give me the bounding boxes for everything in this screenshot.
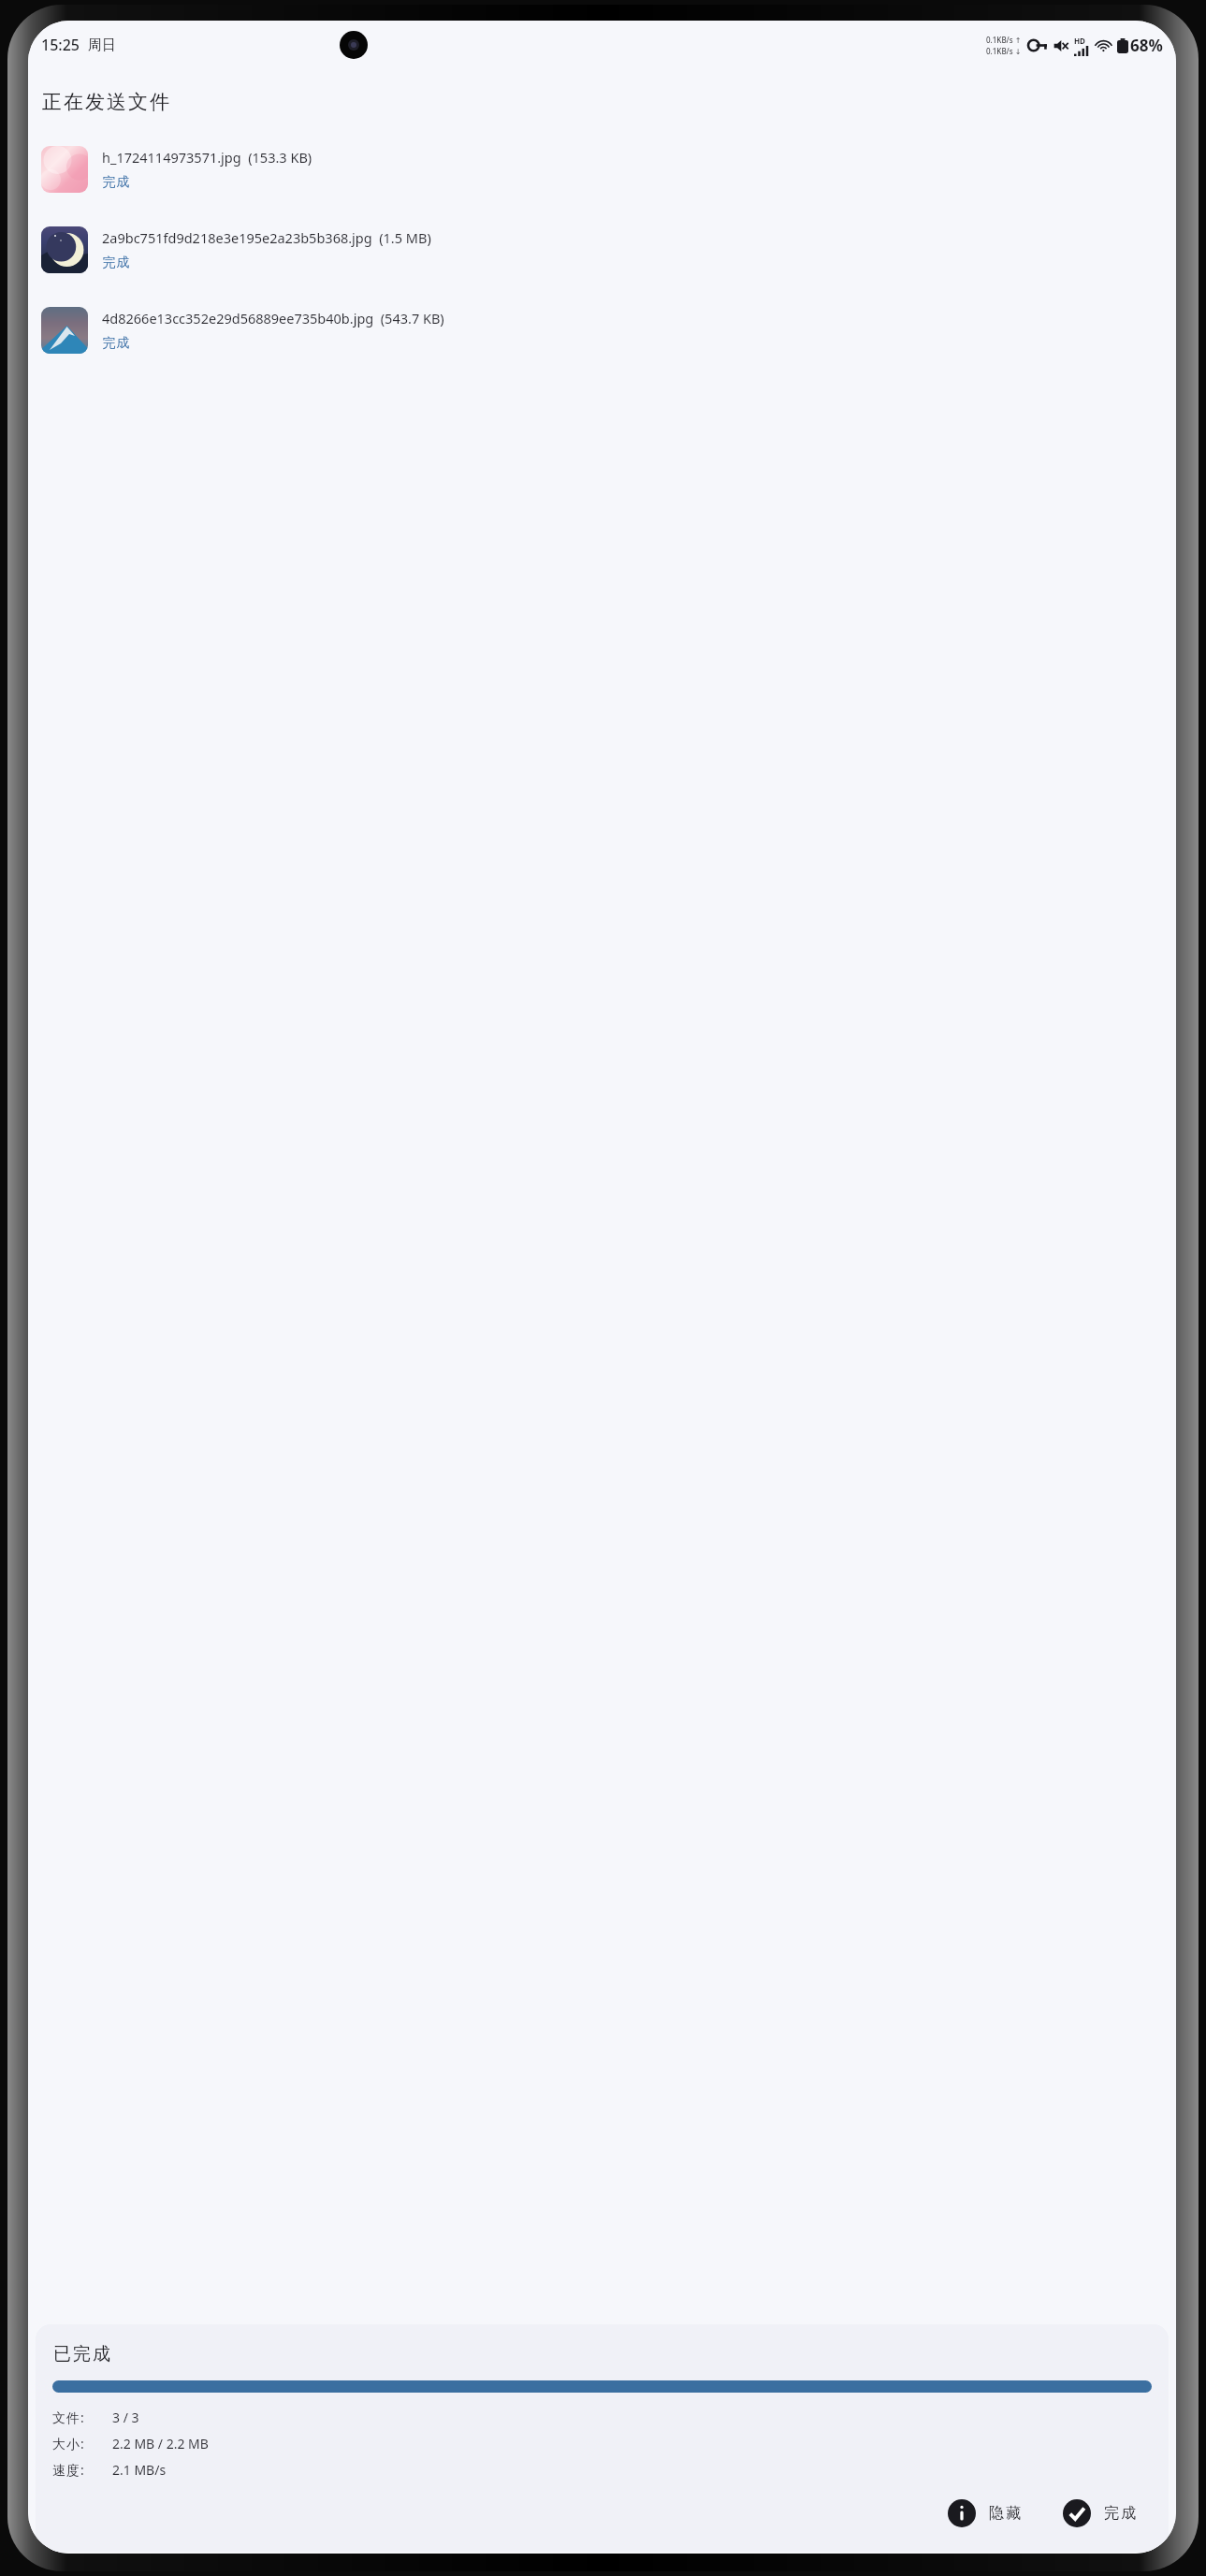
staticText: h_1724114973571.jpg (153.3 KB) [102, 148, 312, 167]
staticText: 0.1KB/s ↓ [986, 46, 1022, 56]
staticText: 0.1KB/s ↑ [986, 35, 1022, 45]
staticText: 68% [1130, 35, 1163, 56]
staticText: 4d8266e13cc352e29d56889ee735b40b.jpg (54… [102, 309, 444, 327]
button[interactable]: 4d8266e13cc352e29d56889ee735b40b.jpg (54… [28, 290, 1176, 371]
staticText: 完成 [102, 174, 130, 191]
staticText: 3 / 3 [112, 2409, 139, 2426]
staticText: 文件: [52, 2409, 107, 2426]
staticText: 完成 [102, 255, 130, 271]
staticText: 隐藏 [988, 2504, 1022, 2523]
staticText: 速度: [52, 2461, 107, 2479]
staticText: HD [1074, 36, 1085, 46]
staticText: 15:25 [41, 35, 80, 55]
staticText: 2a9bc751fd9d218e3e195e2a23b5b368.jpg (1.… [102, 228, 431, 247]
staticText: 完成 [102, 335, 130, 352]
button[interactable]: 完成 [1059, 2496, 1142, 2531]
staticText: 正在发送文件 [41, 90, 170, 114]
staticText: 2.1 MB/s [112, 2461, 167, 2479]
button[interactable]: 2a9bc751fd9d218e3e195e2a23b5b368.jpg (1.… [28, 210, 1176, 290]
button[interactable]: 隐藏 [944, 2496, 1027, 2531]
staticText: 周日 [88, 36, 116, 54]
button[interactable]: h_1724114973571.jpg (153.3 KB) [28, 129, 1176, 210]
staticText: 大小: [52, 2435, 107, 2452]
staticText: 2.2 MB / 2.2 MB [112, 2435, 209, 2452]
staticText: 完成 [1103, 2504, 1137, 2523]
staticText: 已完成 [52, 2343, 111, 2365]
